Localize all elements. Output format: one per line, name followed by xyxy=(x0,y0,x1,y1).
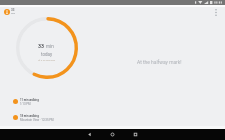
button[interactable]: 33 xyxy=(4,8,15,15)
button[interactable]: Recent apps xyxy=(130,129,141,140)
staticText: min xyxy=(46,44,54,49)
button[interactable]: Back xyxy=(84,129,95,140)
staticText: 33 xyxy=(38,43,45,49)
button[interactable]: Home xyxy=(107,129,118,140)
button[interactable]: 11 min walking xyxy=(0,93,225,109)
staticText: 11 min walking xyxy=(20,98,39,101)
button[interactable]: More options xyxy=(210,6,222,18)
staticText: of a 60 min goal xyxy=(38,59,56,62)
staticText: Mountain View · 12:35 PM xyxy=(20,118,54,121)
staticText: 18 min walking xyxy=(20,114,39,117)
button[interactable]: 18 min walking xyxy=(0,109,225,125)
staticText: min xyxy=(11,12,15,15)
staticText: At the halfway mark! xyxy=(137,59,182,65)
staticText: 33 xyxy=(11,8,15,12)
staticText: 1:13 PM xyxy=(20,102,31,105)
staticText: today xyxy=(41,52,53,57)
